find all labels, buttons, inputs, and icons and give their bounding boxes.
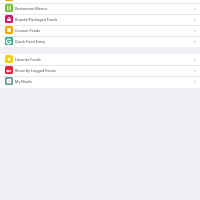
staticText: Recently Logged Foods [15, 68, 56, 73]
staticText: Quick Food Entry [15, 39, 46, 44]
button[interactable]: Favorite Foods [0, 54, 200, 65]
button[interactable]: My Meals [0, 76, 200, 87]
button[interactable]: Restaurant Menus [0, 3, 200, 14]
button[interactable]: Quick Food Entry [0, 36, 200, 47]
button[interactable]: Recently Logged Foods [0, 65, 200, 76]
staticText: Favorite Foods [15, 57, 41, 62]
button[interactable]: Brands/Packaged Foods [0, 14, 200, 25]
staticText: My Meals [15, 79, 32, 84]
staticText: Restaurant Menus [15, 6, 48, 11]
button[interactable]: Custom Foods [0, 25, 200, 36]
staticText: Custom Foods [15, 28, 41, 33]
staticText: Brands/Packaged Foods [15, 17, 58, 22]
